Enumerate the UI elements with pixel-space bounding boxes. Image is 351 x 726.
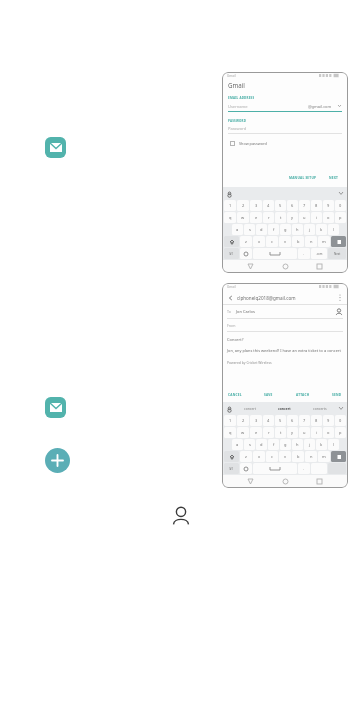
button[interactable]: r [263, 212, 274, 223]
button[interactable]: o [323, 427, 334, 438]
button[interactable]: i [311, 427, 322, 438]
button[interactable]: s [244, 224, 255, 235]
button[interactable]: h [292, 439, 303, 450]
button[interactable]: 5 [275, 415, 286, 426]
button[interactable]: Show password [230, 141, 267, 146]
button[interactable]: 6 [287, 200, 298, 211]
button[interactable]: c [266, 236, 278, 247]
button[interactable]: b [292, 451, 304, 462]
button[interactable]: v [279, 236, 291, 247]
button[interactable]: Concert? [227, 337, 343, 342]
button[interactable]: n [305, 236, 317, 247]
button[interactable]: 9 [323, 200, 334, 211]
button[interactable]: 3 [250, 200, 262, 211]
button[interactable]: x [253, 236, 265, 247]
button[interactable]: e [250, 427, 262, 438]
button[interactable]: Contact [335, 308, 343, 316]
button[interactable]: 7 [299, 200, 310, 211]
button[interactable]: 9 [323, 415, 334, 426]
button[interactable]: Home [279, 260, 292, 273]
button[interactable]: !#1 [224, 463, 239, 474]
button[interactable]: o [323, 212, 334, 223]
button[interactable]: More [337, 190, 345, 198]
button[interactable]: p [335, 427, 346, 438]
button[interactable]: s [244, 439, 255, 450]
button[interactable]: Back [226, 293, 235, 302]
button[interactable]: 5 [275, 200, 286, 211]
button[interactable]: 0 [335, 200, 346, 211]
button[interactable]: 4 [263, 200, 274, 211]
button[interactable]: concert [233, 406, 267, 411]
button[interactable]: y [287, 212, 298, 223]
button[interactable]: f [268, 439, 279, 450]
button[interactable]: Contact [170, 505, 192, 527]
button[interactable]: e [250, 212, 262, 223]
button[interactable]: u [299, 212, 310, 223]
button[interactable]: t [275, 427, 286, 438]
button[interactable]: n [305, 451, 317, 462]
button[interactable]: Compose [45, 448, 70, 473]
button[interactable]: a [232, 439, 243, 450]
button[interactable]: w [237, 427, 249, 438]
button[interactable]: v [279, 451, 291, 462]
button[interactable]: Space [253, 463, 297, 474]
button[interactable]: 2 [237, 200, 249, 211]
button[interactable]: Settings [225, 405, 233, 413]
button[interactable]: a [232, 224, 243, 235]
button[interactable]: !#1 [224, 248, 239, 259]
button[interactable]: Recents [244, 475, 257, 488]
button[interactable]: t [275, 212, 286, 223]
button[interactable]: 1 [224, 200, 236, 211]
button[interactable]: p [335, 212, 346, 223]
button[interactable]: More [337, 405, 345, 413]
button[interactable]: Shift [224, 236, 239, 247]
button[interactable]: q [224, 212, 236, 223]
button[interactable]: SAVE [262, 391, 275, 399]
button[interactable]: 1 [224, 415, 236, 426]
button[interactable]: 4 [263, 415, 274, 426]
button[interactable]: More options [335, 293, 344, 302]
button[interactable]: i [311, 212, 322, 223]
button[interactable]: Emoji [240, 463, 252, 474]
button[interactable]: 0 [335, 415, 346, 426]
button[interactable]: Shift [224, 451, 239, 462]
button[interactable]: Settings [225, 190, 233, 198]
button[interactable]: Next [328, 248, 346, 259]
button[interactable]: m [318, 451, 330, 462]
button[interactable]: 8 [311, 415, 322, 426]
button[interactable]: Back [313, 475, 326, 488]
button[interactable]: Space [253, 248, 297, 259]
button[interactable]: m [318, 236, 330, 247]
button[interactable]: concert [267, 406, 302, 411]
button[interactable]: r [263, 427, 274, 438]
button[interactable]: 2 [237, 415, 249, 426]
button[interactable]: Username [228, 104, 308, 109]
button[interactable]: .com [311, 248, 327, 259]
button[interactable]: g [280, 439, 291, 450]
button[interactable]: y [287, 427, 298, 438]
button[interactable]: From [227, 323, 343, 328]
button[interactable]: f [268, 224, 279, 235]
button[interactable]: NEXT [326, 173, 342, 183]
button[interactable]: q [224, 427, 236, 438]
button[interactable]: 7 [299, 415, 310, 426]
button[interactable]: d [256, 439, 267, 450]
button[interactable]: MANUAL SETUP [286, 173, 320, 183]
button[interactable]: c [266, 451, 278, 462]
button[interactable]: Password [228, 126, 342, 131]
button[interactable]: w [237, 212, 249, 223]
button[interactable]: h [292, 224, 303, 235]
button[interactable]: k [316, 224, 327, 235]
button[interactable]: k [316, 439, 327, 450]
button[interactable]: 6 [287, 415, 298, 426]
button[interactable]: concerts [302, 406, 337, 411]
button[interactable]: Jon, any plans this weekend? I have an e… [227, 348, 343, 353]
button[interactable]: Jon Carlos [236, 309, 335, 314]
